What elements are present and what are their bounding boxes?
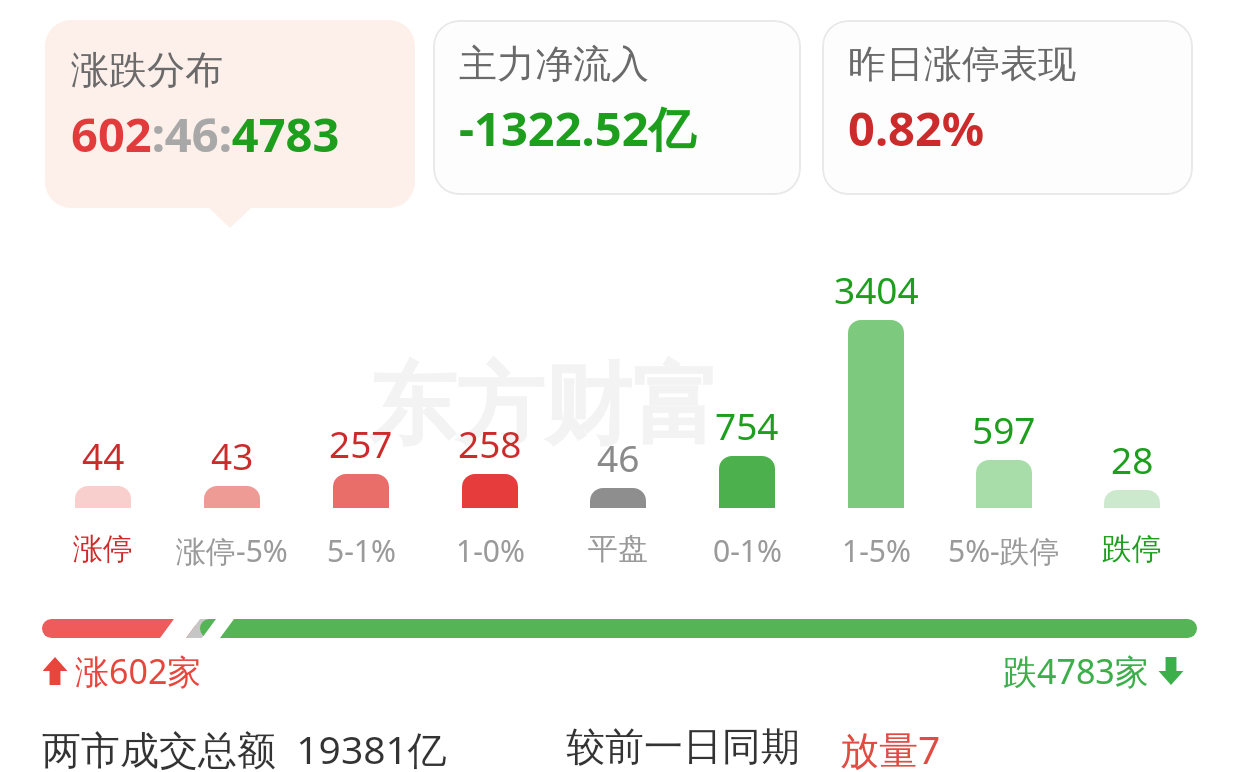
button[interactable]: 涨停 (28, 530, 178, 568)
staticText: 涨停-5% (176, 530, 288, 571)
staticText: 5-1% (327, 530, 396, 571)
button[interactable]: 3404 (806, 264, 946, 314)
button[interactable]: 跌4783家 (1003, 648, 1184, 694)
staticText: 涨602家 (75, 648, 202, 694)
other: Declining (1158, 655, 1184, 687)
button[interactable]: 28 (1062, 434, 1202, 484)
staticText: 1-5% (842, 530, 911, 571)
staticText: 涨跌分布 (71, 46, 223, 94)
button[interactable]: Advancing (42, 648, 202, 694)
staticText: 东方财富 (368, 350, 720, 461)
button[interactable]: 涨跌分布 (45, 20, 415, 228)
staticText: 两市成交总额 19381亿 (42, 722, 447, 772)
button[interactable]: 平盘 (543, 530, 693, 568)
staticText: 主力净流入 (459, 40, 649, 88)
button[interactable]: 跌停 (1057, 530, 1207, 568)
button[interactable]: 5%-跌停 (929, 530, 1079, 571)
button[interactable]: 1-5% (801, 530, 951, 571)
button[interactable]: 主力净流入 (433, 20, 801, 195)
staticText: 5%-跌停 (948, 530, 1060, 571)
button[interactable]: 0-1% (672, 530, 822, 571)
staticText: 1-0% (456, 530, 525, 571)
staticText: 257 (329, 418, 393, 468)
staticText: 754 (715, 400, 779, 450)
button[interactable]: 754 (677, 400, 817, 450)
staticText: 平盘 (588, 530, 648, 568)
button[interactable]: 涨停-5% (157, 530, 307, 571)
staticText: 597 (972, 404, 1036, 454)
button[interactable]: 597 (934, 404, 1074, 454)
button[interactable]: 43 (162, 430, 302, 480)
staticText: 602:46:4783 (71, 102, 340, 166)
staticText: 跌停 (1102, 530, 1162, 568)
staticText: 258 (458, 418, 522, 468)
staticText: 涨停 (73, 530, 133, 568)
other: Advancing (42, 655, 68, 687)
button[interactable]: 258 (420, 418, 560, 468)
button[interactable]: 1-0% (415, 530, 565, 571)
staticText: 昨日涨停表现 (848, 40, 1076, 88)
staticText: -1322.52亿 (459, 96, 696, 160)
staticText: 较前一日同期 (566, 722, 800, 771)
staticText: 0-1% (713, 530, 782, 571)
staticText: 0.82% (848, 96, 985, 160)
button[interactable]: 46 (548, 432, 688, 482)
button[interactable]: 5-1% (286, 530, 436, 571)
button[interactable]: 昨日涨停表现 (822, 20, 1193, 195)
staticText: 43 (211, 430, 254, 480)
staticText: 跌4783家 (1003, 648, 1149, 694)
staticText: 46 (597, 432, 640, 482)
staticText: 44 (82, 430, 125, 480)
staticText: 28 (1111, 434, 1154, 484)
button[interactable]: 257 (291, 418, 431, 468)
button[interactable]: 44 (33, 430, 173, 480)
staticText: 3404 (834, 264, 919, 314)
staticText: 放量7 (840, 722, 941, 772)
